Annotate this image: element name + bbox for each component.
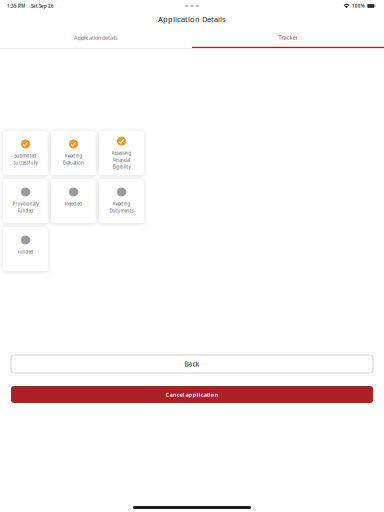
staticText: Financial bbox=[113, 157, 130, 163]
button[interactable]: Funded bbox=[3, 227, 48, 271]
staticText: Sat Sep 26 bbox=[31, 3, 54, 9]
button[interactable]: Cancel application bbox=[11, 386, 373, 403]
staticText: successfully bbox=[13, 160, 37, 166]
staticText: Submitted bbox=[14, 153, 36, 159]
staticText: Cancel application bbox=[165, 391, 218, 398]
button[interactable]: Awaiting bbox=[51, 131, 96, 175]
staticText: Funded bbox=[17, 249, 33, 255]
staticText: Awaiting bbox=[112, 201, 130, 207]
button[interactable]: Application details bbox=[0, 28, 192, 46]
button[interactable]: Provisionally bbox=[3, 179, 48, 223]
button[interactable]: Submitted bbox=[3, 131, 48, 175]
staticText: Awaiting bbox=[64, 153, 82, 159]
button[interactable]: Assessing bbox=[99, 131, 144, 175]
staticText: 100% bbox=[352, 3, 365, 9]
staticText: Documents bbox=[109, 208, 133, 214]
staticText: Evaluation bbox=[63, 160, 84, 166]
staticText: Rejected bbox=[65, 201, 82, 207]
staticText: Provisionally bbox=[12, 201, 38, 207]
button[interactable]: Awaiting bbox=[99, 179, 144, 223]
staticText: Eligibility bbox=[112, 164, 130, 170]
staticText: Assessing bbox=[111, 150, 131, 156]
button[interactable]: Tracker bbox=[192, 28, 384, 46]
staticText: Application details bbox=[74, 34, 118, 41]
button[interactable]: Back bbox=[11, 355, 373, 373]
staticText: Funded bbox=[17, 208, 33, 214]
staticText: Application Details bbox=[158, 14, 226, 24]
staticText: Back bbox=[184, 359, 199, 369]
staticText: Tracker bbox=[278, 34, 297, 41]
staticText: 1:35 PM bbox=[7, 3, 25, 9]
button[interactable]: Rejected bbox=[51, 179, 96, 223]
